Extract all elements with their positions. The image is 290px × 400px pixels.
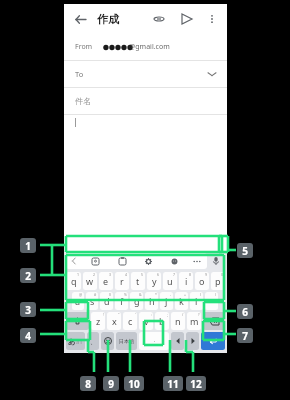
button[interactable]: # [86, 292, 98, 310]
staticText: f [120, 295, 124, 307]
button[interactable]: ' [123, 312, 137, 330]
button[interactable]: Cursor right [186, 332, 199, 350]
button[interactable]: @ [72, 292, 84, 310]
button[interactable]: ) [205, 292, 218, 310]
staticText: : [151, 312, 152, 317]
button[interactable]: Back [71, 10, 89, 28]
staticText: c [128, 315, 133, 327]
button[interactable]: Voice input [207, 251, 225, 271]
button[interactable]: Space [139, 332, 169, 350]
staticText: 、 [90, 337, 97, 346]
staticText: a [75, 295, 81, 307]
button[interactable]: 3 [99, 272, 113, 290]
button[interactable]: " [107, 312, 121, 330]
button[interactable]: Backspace [203, 312, 225, 330]
staticText: m [190, 315, 199, 327]
staticText: To [75, 69, 84, 79]
staticText: p [215, 275, 221, 287]
button[interactable]: 4 [115, 272, 129, 290]
staticText: ・ [152, 338, 157, 344]
staticText: r [120, 275, 124, 287]
button[interactable]: 8 [179, 272, 193, 290]
button[interactable]: 1 [66, 272, 81, 290]
staticText: % [124, 292, 127, 297]
button[interactable]: Emoji [101, 332, 114, 350]
staticText: k [179, 295, 184, 307]
staticText: 8 [189, 272, 192, 277]
button[interactable]: % [115, 292, 128, 310]
staticText: @gmail.com [129, 42, 170, 52]
staticText: 11 [167, 377, 179, 391]
button[interactable]: 0 [211, 272, 225, 290]
staticText: " [118, 312, 120, 317]
button[interactable]: More options [204, 11, 220, 27]
button[interactable]: Shift [66, 312, 89, 330]
button[interactable]: ; [155, 312, 169, 330]
button[interactable]: emoji [161, 253, 187, 269]
button[interactable]: gear [135, 253, 161, 269]
staticText: z [96, 315, 101, 327]
staticText: 6 [157, 272, 160, 277]
staticText: i [185, 275, 188, 287]
staticText: ー [207, 296, 216, 307]
staticText: ? [198, 312, 200, 317]
button[interactable]: Cursor left [171, 332, 184, 350]
staticText: q [71, 275, 77, 287]
staticText: & [139, 292, 142, 297]
button[interactable]: 9 [195, 272, 209, 290]
staticText: 3 [25, 303, 31, 317]
staticText: 6 [242, 305, 248, 319]
button[interactable]: & [130, 292, 143, 310]
staticText: ) [215, 292, 217, 297]
staticText: * [155, 292, 157, 297]
staticText: @ [79, 292, 83, 297]
button[interactable]: 6 [147, 272, 161, 290]
button[interactable]: 5 [131, 272, 145, 290]
staticText: 日本語 [119, 338, 134, 344]
staticText: ! [103, 312, 104, 317]
button[interactable]: : [139, 312, 153, 330]
button[interactable]: - [160, 292, 173, 310]
button[interactable]: $ [100, 292, 113, 310]
staticText: l [195, 295, 198, 307]
staticText: d [104, 295, 110, 307]
button[interactable]: Japanese [116, 332, 137, 350]
staticText: n [175, 315, 181, 327]
staticText: 5 [141, 272, 144, 277]
staticText: 3 [109, 272, 112, 277]
button[interactable]: To [75, 61, 216, 87]
button[interactable]: ( [190, 292, 203, 310]
staticText: t [136, 275, 140, 287]
staticText: g [134, 295, 140, 307]
staticText: 5 [242, 244, 248, 258]
button[interactable]: + [175, 292, 188, 310]
button[interactable]: 2 [83, 272, 97, 290]
button[interactable]: ? [187, 312, 201, 330]
staticText: 2 [25, 269, 31, 283]
staticText: あ [68, 337, 76, 346]
staticText: 9 [108, 377, 114, 391]
button[interactable]: * [145, 292, 158, 310]
button[interactable]: ! [91, 312, 105, 330]
staticText: 12 [190, 377, 202, 391]
staticText: 1 [25, 239, 31, 253]
button[interactable]: Switch to kana [66, 332, 85, 350]
staticText: 4 [25, 329, 31, 343]
button[interactable]: / [171, 312, 185, 330]
staticText: a1 [76, 338, 83, 346]
staticText: j [165, 295, 168, 307]
staticText: From [75, 42, 93, 52]
button[interactable]: clip [109, 253, 135, 269]
button[interactable]: Collapse [66, 253, 82, 269]
button[interactable]: Attach [150, 10, 168, 28]
button[interactable]: 7 [163, 272, 177, 290]
button[interactable]: More [187, 253, 207, 269]
staticText: 0 [221, 272, 224, 277]
button[interactable]: Enter [201, 332, 225, 350]
button[interactable]: Comma [87, 332, 99, 350]
staticText: e [103, 275, 109, 287]
staticText: o [199, 275, 205, 287]
staticText: + [184, 292, 187, 297]
button[interactable]: Send [178, 10, 196, 28]
button[interactable]: sticker [82, 253, 109, 269]
